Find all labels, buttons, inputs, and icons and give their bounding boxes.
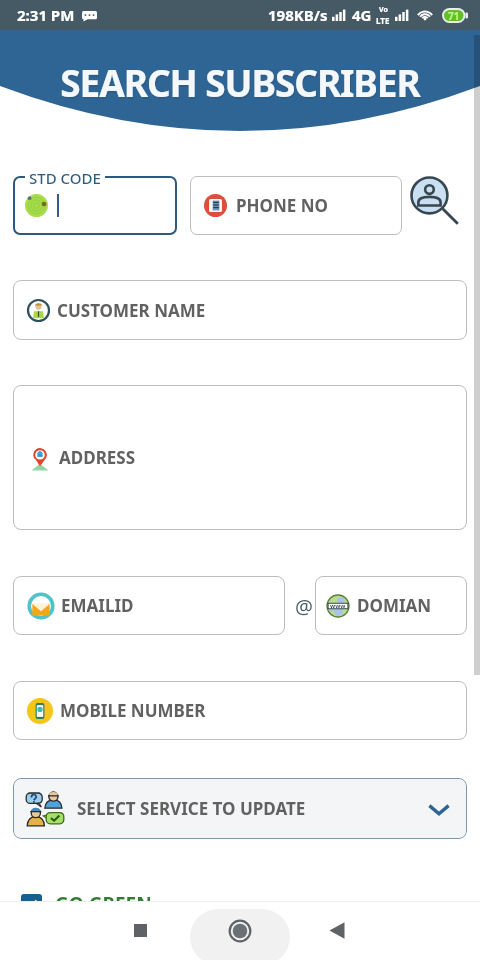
button[interactable]: GO GREEN	[21, 891, 152, 901]
staticText: Vo	[379, 5, 388, 15]
staticText: STD CODE	[29, 168, 101, 188]
button[interactable]: EMAILID	[13, 576, 285, 635]
staticText: @	[295, 593, 313, 620]
staticText: GO GREEN	[55, 891, 152, 901]
staticText: 71	[448, 9, 460, 23]
staticText: DOMIAN	[357, 594, 432, 617]
button[interactable]: ADDRESS	[13, 385, 467, 530]
button[interactable]: www	[315, 576, 467, 635]
staticText: CUSTOMER NAME	[57, 299, 206, 322]
staticText: SEARCH SUBSCRIBER	[0, 57, 480, 107]
staticText: MOBILE NUMBER	[60, 699, 206, 722]
button[interactable]: Home	[210, 901, 270, 960]
staticText: 4G	[352, 5, 372, 25]
button[interactable]	[13, 176, 177, 235]
staticText: SEARCH SUBSCRIBER	[1, 59, 480, 109]
staticText: 2:31 PM	[17, 5, 75, 25]
staticText: EMAILID	[61, 594, 134, 617]
button[interactable]: CUSTOMER NAME	[13, 280, 467, 340]
staticText: ADDRESS	[59, 446, 136, 469]
staticText: www	[330, 602, 346, 610]
staticText: SELECT SERVICE TO UPDATE	[77, 797, 306, 820]
button[interactable]: PHONE NO	[190, 176, 402, 235]
button[interactable]: Back	[307, 901, 367, 960]
staticText: 198KB/s	[268, 5, 328, 25]
button[interactable]: SELECT SERVICE TO UPDATE	[13, 778, 467, 839]
staticText: PHONE NO	[236, 194, 329, 217]
button[interactable]: Search subscriber	[411, 177, 463, 229]
button[interactable]: Recent apps	[110, 901, 170, 960]
staticText: LTE	[376, 15, 390, 26]
button[interactable]: MOBILE NUMBER	[13, 681, 467, 740]
